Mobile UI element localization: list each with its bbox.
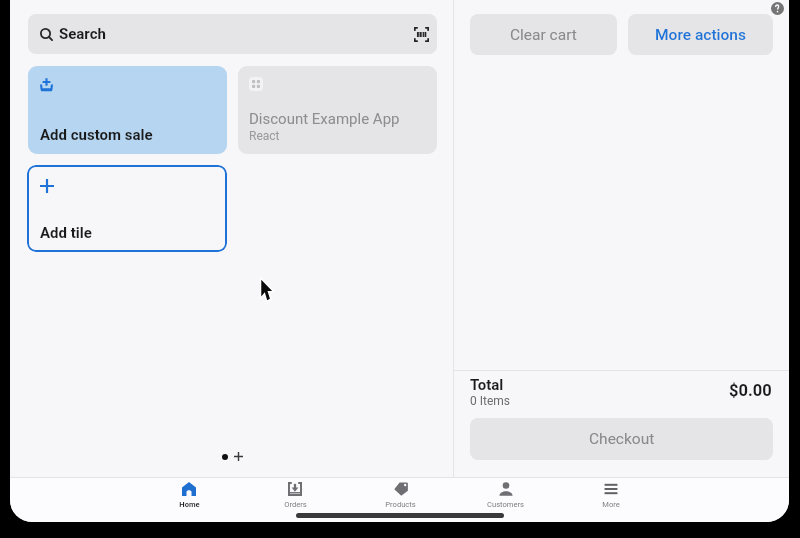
staticText: More actions [655, 26, 746, 44]
button[interactable]: Search [28, 14, 437, 54]
staticText: Total [470, 376, 504, 394]
staticText: Discount Example App [249, 110, 400, 128]
button[interactable]: Orders [242, 478, 348, 522]
staticText: Customers [487, 500, 524, 509]
button[interactable]: Checkout [470, 418, 773, 460]
staticText: Clear cart [510, 26, 577, 44]
button[interactable]: Products [348, 478, 453, 522]
button[interactable]: Customers [453, 478, 558, 522]
staticText: Orders [284, 500, 307, 509]
staticText: 0 Items [470, 394, 510, 408]
staticText: Add tile [40, 224, 92, 242]
button[interactable]: Add tile [27, 165, 227, 252]
staticText: Search [59, 25, 106, 43]
staticText: $0.00 [729, 381, 772, 400]
button[interactable]: More actions [628, 14, 773, 55]
button[interactable]: Help [771, 2, 784, 15]
button[interactable]: Discount Example App [238, 66, 437, 154]
button[interactable]: More [558, 478, 663, 522]
button[interactable]: Clear cart [470, 14, 617, 55]
button[interactable]: Home [136, 478, 242, 522]
staticText: Add custom sale [40, 126, 153, 144]
staticText: More [602, 500, 620, 509]
button[interactable]: Scan barcode [414, 27, 429, 42]
staticText: React [249, 129, 280, 143]
staticText: Checkout [589, 430, 655, 448]
staticText: Home [179, 500, 200, 509]
button[interactable]: Add page [233, 451, 244, 462]
button[interactable]: Add custom sale [28, 66, 227, 154]
staticText: Products [385, 500, 416, 509]
